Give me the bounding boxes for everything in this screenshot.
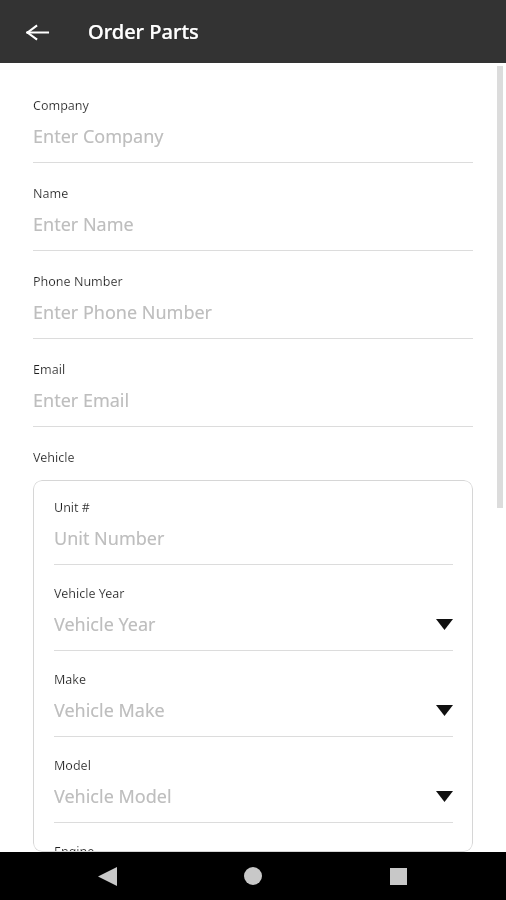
staticText: Vehicle Model: [54, 784, 172, 809]
staticText: Engine: [54, 843, 95, 852]
staticText: Model: [54, 757, 91, 774]
button[interactable]: Recent apps: [374, 852, 422, 900]
button[interactable]: Unit #: [54, 499, 453, 565]
staticText: Enter Company: [33, 124, 164, 149]
staticText: Unit #: [54, 499, 90, 516]
staticText: Company: [33, 97, 89, 114]
staticText: Unit Number: [54, 526, 165, 551]
button[interactable]: Engine: [54, 843, 453, 852]
button[interactable]: Company: [33, 97, 473, 163]
button[interactable]: Home: [229, 852, 277, 900]
staticText: Order Parts: [88, 18, 199, 45]
button[interactable]: Model: [54, 757, 453, 823]
button[interactable]: Phone Number: [33, 273, 473, 339]
staticText: Make: [54, 671, 87, 688]
staticText: Enter Email: [33, 388, 130, 413]
staticText: Vehicle Year: [54, 612, 156, 637]
button[interactable]: Make: [54, 671, 453, 737]
button[interactable]: Back: [15, 10, 59, 54]
staticText: Enter Name: [33, 212, 134, 237]
staticText: Phone Number: [33, 273, 123, 290]
button[interactable]: Vehicle Year: [54, 585, 453, 651]
button[interactable]: Name: [33, 185, 473, 251]
button[interactable]: Back: [83, 852, 131, 900]
staticText: Vehicle Make: [54, 698, 165, 723]
staticText: Email: [33, 361, 66, 378]
button[interactable]: Email: [33, 361, 473, 427]
staticText: Vehicle Year: [54, 585, 125, 602]
staticText: Name: [33, 185, 69, 202]
staticText: Vehicle: [33, 449, 75, 466]
staticText: Enter Phone Number: [33, 300, 213, 325]
